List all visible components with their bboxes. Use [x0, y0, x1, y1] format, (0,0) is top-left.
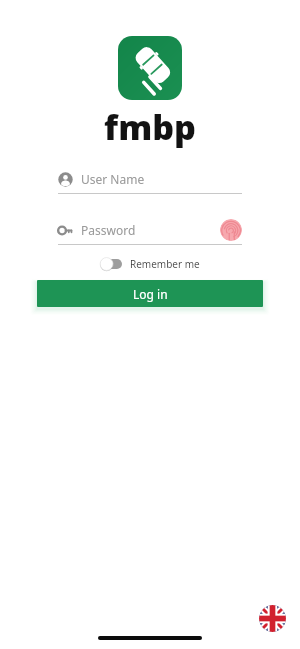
- staticText: Log in: [133, 286, 168, 302]
- button[interactable]: Password: [58, 216, 242, 244]
- button[interactable]: Log in: [37, 280, 263, 307]
- staticText: fmbp: [104, 104, 196, 150]
- button[interactable]: User Name: [58, 165, 242, 193]
- staticText: Remember me: [130, 257, 200, 271]
- staticText: User Name: [81, 171, 145, 187]
- button[interactable]: Fingerprint login: [220, 219, 242, 241]
- button[interactable]: Remember me: [96, 254, 204, 274]
- button[interactable]: Change language: [259, 605, 286, 632]
- staticText: Password: [81, 222, 136, 238]
